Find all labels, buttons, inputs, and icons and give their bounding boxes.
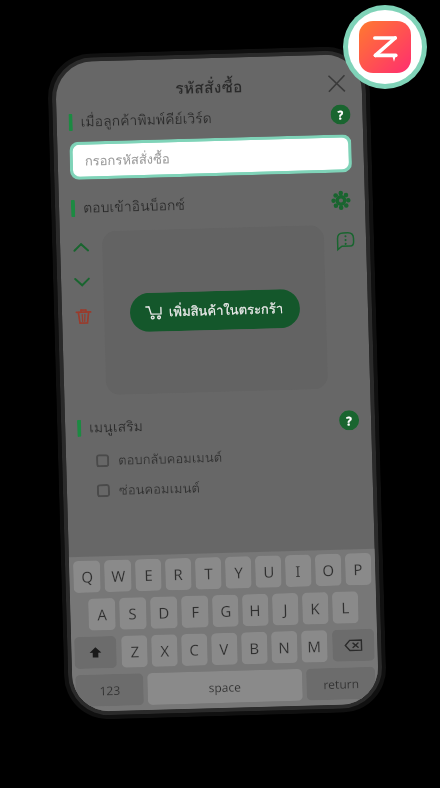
staticText: U: [263, 561, 275, 582]
button[interactable]: space: [147, 669, 303, 705]
staticText: return: [323, 675, 360, 692]
button[interactable]: J: [272, 593, 299, 625]
staticText: ตอบเข้าอินบ็อกซ์: [83, 194, 185, 219]
staticText: V: [219, 639, 230, 659]
button[interactable]: T: [195, 557, 222, 590]
button[interactable]: Help: [339, 410, 359, 431]
staticText: ซ่อนคอมเมนต์: [119, 477, 200, 501]
button[interactable]: E: [135, 559, 162, 591]
button[interactable]: Z: [121, 635, 148, 668]
button[interactable]: C: [181, 633, 208, 666]
button[interactable]: A: [88, 598, 116, 631]
staticText: E: [144, 565, 154, 585]
button[interactable]: P: [345, 553, 372, 585]
staticText: เมนูเสริม: [89, 415, 143, 439]
staticText: เมื่อลูกค้าพิมพ์คีย์เวิร์ด: [80, 107, 213, 133]
button[interactable]: G: [212, 594, 239, 627]
staticText: space: [208, 678, 242, 695]
button[interactable]: O: [315, 554, 342, 586]
button[interactable]: X: [151, 634, 178, 667]
button[interactable]: R: [165, 558, 192, 590]
staticText: Q: [81, 566, 94, 587]
button[interactable]: เพิ่มสินค้าในตระกร้า: [129, 289, 300, 332]
staticText: N: [278, 637, 291, 657]
button[interactable]: D: [150, 596, 178, 629]
button[interactable]: เพิ่มสินค้าในตระกร้า: [102, 225, 328, 395]
button[interactable]: Q: [73, 560, 101, 593]
staticText: P: [353, 559, 364, 579]
button[interactable]: Settings: [329, 188, 353, 213]
staticText: T: [204, 563, 214, 583]
button[interactable]: Shift: [74, 636, 117, 669]
button[interactable]: ซ่อนคอมเมนต์: [97, 472, 373, 501]
staticText: K: [310, 598, 321, 618]
button[interactable]: B: [241, 632, 268, 664]
button[interactable]: F: [181, 595, 209, 628]
staticText: ?: [337, 106, 344, 123]
button[interactable]: กรอกรหัสสั่งซื้อ: [72, 137, 349, 177]
staticText: 123: [99, 682, 121, 698]
staticText: X: [160, 640, 170, 661]
staticText: ?: [346, 412, 352, 428]
staticText: W: [111, 566, 126, 586]
staticText: M: [307, 636, 322, 657]
staticText: รหัสสั่งซื้อ: [174, 74, 243, 101]
button[interactable]: Close: [321, 68, 352, 99]
staticText: C: [189, 640, 200, 660]
staticText: Y: [234, 562, 244, 582]
staticText: L: [341, 597, 350, 618]
button[interactable]: Move down: [68, 267, 96, 296]
button[interactable]: W: [104, 559, 132, 592]
staticText: B: [249, 638, 260, 658]
button[interactable]: K: [302, 592, 329, 625]
staticText: R: [173, 564, 184, 584]
staticText: H: [249, 600, 262, 620]
button[interactable]: N: [271, 631, 298, 664]
button[interactable]: Zalo: [359, 21, 411, 73]
staticText: กรอกรหัสสั่งซื้อ: [84, 148, 170, 172]
button[interactable]: Delete: [69, 301, 97, 330]
button[interactable]: More options: [331, 226, 359, 255]
button[interactable]: Backspace: [332, 629, 375, 662]
button[interactable]: 123: [75, 673, 144, 707]
button[interactable]: S: [119, 597, 147, 630]
button[interactable]: return: [306, 667, 376, 701]
button[interactable]: L: [332, 591, 359, 624]
staticText: G: [220, 601, 232, 621]
staticText: F: [191, 602, 200, 622]
button[interactable]: I: [285, 554, 312, 587]
button[interactable]: ตอบกลับคอมเมนต์: [96, 442, 372, 471]
button[interactable]: V: [211, 632, 238, 665]
button[interactable]: Help: [330, 104, 351, 125]
button[interactable]: U: [255, 555, 282, 588]
button[interactable]: Move up: [67, 233, 96, 262]
staticText: J: [283, 599, 289, 619]
staticText: I: [295, 561, 302, 581]
button[interactable]: Y: [225, 556, 252, 589]
staticText: O: [322, 560, 335, 580]
staticText: S: [128, 603, 138, 623]
button[interactable]: H: [242, 594, 269, 626]
staticText: เพิ่มสินค้าในตระกร้า: [169, 298, 284, 322]
staticText: D: [158, 602, 170, 623]
button[interactable]: M: [301, 630, 328, 663]
staticText: A: [97, 604, 108, 624]
staticText: Z: [130, 641, 140, 661]
staticText: ตอบกลับคอมเมนต์: [118, 447, 223, 471]
